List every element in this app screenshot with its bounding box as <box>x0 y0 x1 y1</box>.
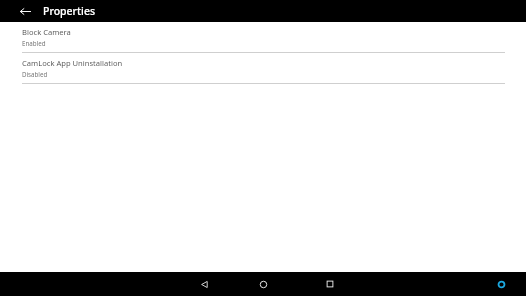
staticText: Enabled <box>22 39 46 47</box>
button[interactable]: Block Camera <box>0 22 526 52</box>
staticText: Disabled <box>22 70 48 78</box>
staticText: Properties <box>43 4 96 18</box>
button[interactable]: Back <box>196 276 212 292</box>
button[interactable]: Status indicator <box>493 276 509 292</box>
staticText: Block Camera <box>22 27 71 37</box>
button[interactable]: Home <box>255 276 271 292</box>
button[interactable]: Recent apps <box>322 276 338 292</box>
button[interactable]: Back <box>16 2 34 20</box>
staticText: CamLock App Uninstallation <box>22 58 123 68</box>
button[interactable]: CamLock App Uninstallation <box>0 53 526 83</box>
